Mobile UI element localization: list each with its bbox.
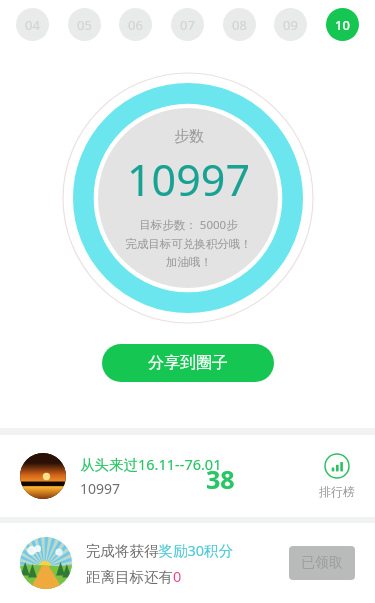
staticText: 06 xyxy=(128,16,143,34)
staticText: 完成目标可兑换积分哦！ xyxy=(125,237,252,251)
staticText: 分享到圈子 xyxy=(148,353,228,373)
button[interactable]: 10 xyxy=(326,8,359,41)
button[interactable]: 已领取 xyxy=(289,546,355,580)
staticText: 10997 xyxy=(127,150,250,209)
button[interactable]: 分享到圈子 xyxy=(102,344,274,382)
staticText: 05 xyxy=(77,16,92,34)
staticText: 加油哦！ xyxy=(166,255,212,269)
staticText: 08 xyxy=(232,16,247,34)
staticText: 09 xyxy=(283,16,298,34)
staticText: 距离目标还有0 xyxy=(86,566,182,586)
button[interactable]: 08 xyxy=(223,8,256,41)
staticText: 10 xyxy=(335,16,350,34)
staticText: 04 xyxy=(25,16,40,34)
button[interactable]: 05 xyxy=(68,8,101,41)
staticText: 07 xyxy=(180,16,195,34)
staticText: 已领取 xyxy=(301,554,343,572)
button[interactable]: 04 xyxy=(16,8,49,41)
button[interactable]: 09 xyxy=(274,8,307,41)
staticText: 从头来过16.11--76.01 xyxy=(80,454,222,474)
button[interactable]: 07 xyxy=(171,8,204,41)
staticText: 38 xyxy=(206,462,235,496)
button[interactable]: 06 xyxy=(119,8,152,41)
staticText: 步数 xyxy=(174,127,204,146)
staticText: 排行榜 xyxy=(319,484,355,499)
button[interactable]: 完成将获得奖励30积分 xyxy=(0,523,375,603)
staticText: 完成将获得奖励30积分 xyxy=(86,540,234,560)
button[interactable]: 排行榜 xyxy=(319,453,355,499)
staticText: 目标步数： 5000步 xyxy=(139,217,238,233)
staticText: 10997 xyxy=(80,479,121,498)
button[interactable]: 从头来过16.11--76.01 xyxy=(0,435,375,517)
